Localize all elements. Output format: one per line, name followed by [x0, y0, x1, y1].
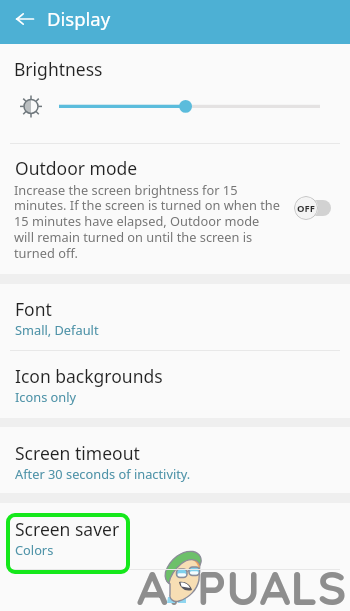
button[interactable]: Font [0, 283, 350, 350]
staticText: Colors [15, 541, 54, 558]
button[interactable]: Screen saver [0, 503, 350, 570]
staticText: After 30 seconds of inactivity. [15, 465, 191, 482]
staticText: Icons only [15, 388, 77, 405]
button[interactable]: Navigate up [3, 0, 47, 41]
staticText: Display [47, 6, 111, 31]
button[interactable]: Screen timeout [0, 427, 350, 494]
button[interactable]: Outdoor mode [0, 144, 350, 272]
staticText: Brightness [14, 57, 103, 81]
staticText: Screen saver [15, 517, 120, 541]
staticText: Screen timeout [15, 441, 140, 465]
staticText: Icon backgrounds [15, 364, 163, 388]
button[interactable]: Icon backgrounds [0, 350, 350, 417]
button[interactable]: Brightness [0, 44, 350, 143]
staticText: APPUALS [137, 557, 347, 611]
staticText: Font [15, 297, 52, 321]
staticText: Increase the screen brightness for 15 mi… [14, 181, 282, 262]
staticText: Outdoor mode [15, 156, 138, 180]
staticText: Small, Default [15, 321, 99, 338]
staticText: OFF [297, 202, 315, 215]
